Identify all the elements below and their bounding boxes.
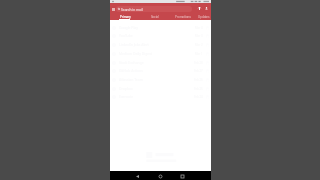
staticText: Primary [120, 15, 131, 19]
button[interactable]: Recents [178, 172, 186, 180]
button[interactable]: Search in mail [116, 6, 192, 12]
button[interactable]: Account [203, 5, 210, 12]
staticText: Updates [198, 15, 210, 19]
button[interactable]: Compose [196, 5, 203, 12]
staticText: Promotions [175, 15, 191, 19]
staticText: Social [151, 15, 159, 19]
button[interactable]: Menu [110, 6, 116, 12]
button[interactable]: Promotions [172, 13, 194, 20]
button[interactable]: Home [156, 172, 164, 180]
staticText: Search in mail [121, 7, 143, 11]
button[interactable]: Social [144, 13, 166, 20]
button[interactable]: Primary [110, 13, 140, 20]
button[interactable]: Back [133, 172, 141, 180]
button[interactable]: Updates [193, 13, 215, 20]
